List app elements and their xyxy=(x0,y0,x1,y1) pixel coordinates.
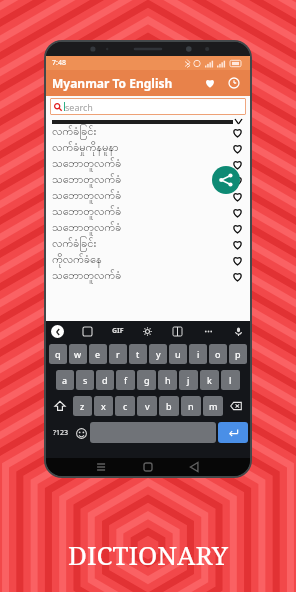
staticText: t xyxy=(136,348,140,360)
button[interactable]: သဘောတူလက်ခံ xyxy=(52,156,244,172)
button[interactable]: Favorite xyxy=(231,174,244,187)
button[interactable]: z xyxy=(73,396,92,416)
staticText: h xyxy=(165,374,171,386)
staticText: s xyxy=(83,374,88,386)
button[interactable]: လက်ခံမှုကိုနမူနာ xyxy=(52,140,244,156)
button[interactable]: a xyxy=(56,370,74,390)
staticText: လက်ခံခြင်း xyxy=(52,124,231,140)
button[interactable]: History xyxy=(224,73,244,93)
button[interactable]: သဘောတူလက်ခံ xyxy=(52,172,244,188)
button[interactable]: q xyxy=(49,344,67,364)
staticText: g xyxy=(144,374,150,386)
button[interactable]: Favorite xyxy=(231,270,244,283)
staticText: i xyxy=(197,348,200,360)
staticText: y xyxy=(156,348,161,360)
button[interactable]: Sticker xyxy=(81,325,94,338)
button[interactable]: လက်ခံခြင်း xyxy=(52,124,244,140)
staticText: v xyxy=(145,400,150,412)
button[interactable]: u xyxy=(169,344,187,364)
staticText: k xyxy=(207,374,212,386)
button[interactable]: Settings xyxy=(141,325,154,338)
staticText: သဘောတူလက်ခံ xyxy=(52,268,231,284)
button[interactable]: i xyxy=(189,344,207,364)
button[interactable]: b xyxy=(159,396,179,416)
button[interactable]: n xyxy=(181,396,201,416)
button[interactable]: m xyxy=(203,396,223,416)
button[interactable]: Favorite xyxy=(231,190,244,203)
button[interactable]: Favorite xyxy=(231,238,244,251)
button[interactable]: Favorite xyxy=(231,158,244,171)
staticText: j xyxy=(187,374,190,386)
staticText: 7:48 xyxy=(52,58,66,68)
staticText: m xyxy=(209,400,218,412)
staticText: l xyxy=(229,374,232,386)
staticText: သဘောတူလက်ခံ xyxy=(52,172,231,188)
staticText: p xyxy=(235,348,241,360)
staticText: သဘောတူလက်ခံ xyxy=(52,204,231,220)
button[interactable]: Back xyxy=(51,325,64,338)
staticText: x xyxy=(101,400,106,412)
button[interactable]: သဘောတူလက်ခံ xyxy=(52,204,244,220)
button[interactable]: Backspace xyxy=(225,396,247,416)
staticText: သဘောတူလက်ခံ xyxy=(52,156,231,172)
button[interactable]: c xyxy=(115,396,135,416)
button[interactable]: Voice input xyxy=(232,325,245,338)
staticText: b xyxy=(166,400,172,412)
button[interactable]: Favorites xyxy=(200,73,220,93)
button[interactable]: Favorite xyxy=(231,126,244,139)
staticText: a xyxy=(62,374,68,386)
button[interactable]: Favorite xyxy=(231,206,244,219)
button[interactable]: Share xyxy=(212,166,240,194)
staticText: o xyxy=(215,348,221,360)
button[interactable]: j xyxy=(179,370,198,390)
button[interactable]: search xyxy=(54,98,242,115)
button[interactable]: d xyxy=(96,370,114,390)
button[interactable]: t xyxy=(129,344,147,364)
button[interactable]: e xyxy=(89,344,107,364)
button[interactable]: w xyxy=(69,344,87,364)
button[interactable]: ?123 xyxy=(48,420,74,445)
button[interactable]: သဘောတူလက်ခံ xyxy=(52,220,244,236)
staticText: ?123 xyxy=(53,428,69,438)
button[interactable]: သဘောတူလက်ခံ xyxy=(52,188,244,204)
staticText: w xyxy=(74,348,82,360)
staticText: q xyxy=(55,348,61,360)
staticText: n xyxy=(188,400,194,412)
button[interactable]: f xyxy=(116,370,135,390)
button[interactable]: o xyxy=(209,344,227,364)
button[interactable]: Emoji xyxy=(74,426,88,440)
button[interactable]: လက်ခံခြင်း xyxy=(52,236,244,252)
button[interactable]: r xyxy=(109,344,127,364)
button[interactable]: l xyxy=(221,370,240,390)
button[interactable]: Enter xyxy=(218,422,248,443)
button[interactable]: y xyxy=(149,344,167,364)
button[interactable]: x xyxy=(94,396,113,416)
button[interactable]: သဘောတူလက်ခံ xyxy=(52,268,244,284)
staticText: DICTIONARY xyxy=(0,537,296,572)
button[interactable]: Translate xyxy=(171,325,184,338)
button[interactable]: More xyxy=(202,325,215,338)
button[interactable]: Favorite xyxy=(231,142,244,155)
button[interactable]: GIF xyxy=(112,326,124,336)
staticText: Myanmar To English xyxy=(52,75,200,91)
button[interactable]: g xyxy=(137,370,156,390)
button[interactable]: Space xyxy=(90,422,216,443)
staticText: r xyxy=(116,348,120,360)
staticText: u xyxy=(175,348,181,360)
button[interactable]: Favorite xyxy=(231,254,244,267)
button[interactable]: k xyxy=(200,370,219,390)
staticText: z xyxy=(80,400,85,412)
button[interactable]: Shift xyxy=(49,396,71,416)
button[interactable]: s xyxy=(76,370,94,390)
staticText: လက်ခံခြင်း xyxy=(52,236,231,252)
staticText: c xyxy=(123,400,128,412)
button[interactable]: h xyxy=(158,370,177,390)
staticText: d xyxy=(102,374,108,386)
button[interactable]: v xyxy=(137,396,157,416)
button[interactable] xyxy=(52,117,244,124)
button[interactable]: Favorite xyxy=(231,222,244,235)
button[interactable]: ကိုလက်ခံနေ xyxy=(52,252,244,268)
staticText: e xyxy=(95,348,101,360)
staticText: search xyxy=(65,101,93,113)
button[interactable]: p xyxy=(229,344,247,364)
